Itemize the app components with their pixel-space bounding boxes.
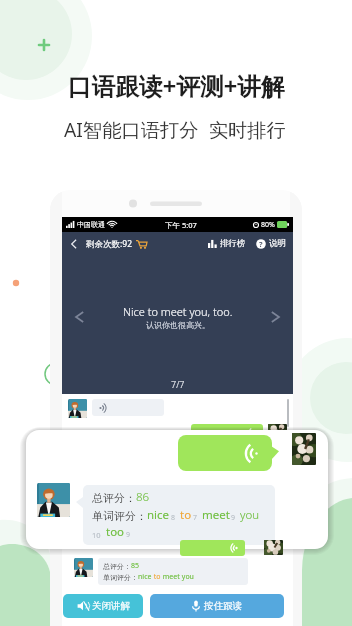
staticText: 排行榜 <box>220 238 246 249</box>
staticText: meet <box>202 507 230 523</box>
staticText: 中国联通 <box>77 220 105 229</box>
staticText: ? <box>259 239 263 249</box>
staticText: 单词评分： <box>103 573 138 582</box>
staticText: 剩余次数:92 <box>86 238 133 250</box>
staticText: 关闭讲解 <box>92 600 130 612</box>
staticText: 80% <box>261 220 275 230</box>
staticText: AI智能口语打分 实时排行 <box>64 116 286 142</box>
staticText: to <box>152 572 161 582</box>
button[interactable] <box>180 540 245 556</box>
button[interactable]: 按住跟读 <box>150 594 284 618</box>
staticText: nice <box>147 507 170 523</box>
button[interactable] <box>92 399 164 416</box>
staticText: 口语跟读+评测+讲解 <box>68 70 285 102</box>
button[interactable]: 下一句 <box>265 307 285 327</box>
staticText: nice <box>138 572 152 582</box>
staticText: 9 <box>231 513 236 523</box>
staticText: to <box>180 507 192 523</box>
staticText: too <box>106 524 125 540</box>
staticText: 10 <box>92 530 101 540</box>
button[interactable]: 上一句 <box>70 307 90 327</box>
staticText: 9 <box>126 530 131 540</box>
button[interactable]: 排行榜 <box>207 238 247 249</box>
staticText: 单词评分： <box>92 509 147 523</box>
button[interactable]: ? <box>255 238 287 249</box>
staticText: you <box>240 507 260 523</box>
staticText: you <box>180 572 194 582</box>
button[interactable]: 购物车 <box>136 239 147 249</box>
staticText: 7/7 <box>171 378 185 390</box>
staticText: 总评分： <box>92 491 136 505</box>
staticText: 认识你也很高兴。 <box>146 320 210 330</box>
staticText: you <box>174 463 188 473</box>
staticText: 86 <box>136 489 150 505</box>
staticText: 下午 5:07 <box>165 220 197 230</box>
button[interactable]: 返回 <box>68 236 80 252</box>
staticText: 按住跟读 <box>204 600 242 612</box>
staticText: 85 <box>131 561 140 571</box>
staticText: 8 <box>171 513 176 523</box>
staticText: 总评分： <box>103 562 131 571</box>
button[interactable] <box>178 435 272 471</box>
staticText: Nice to meet you, too. <box>123 304 233 319</box>
staticText: 7 <box>193 513 198 523</box>
button[interactable]: 关闭讲解 <box>63 594 143 618</box>
staticText: meet <box>161 572 180 582</box>
staticText: 说明 <box>269 238 286 249</box>
button[interactable] <box>191 424 263 441</box>
